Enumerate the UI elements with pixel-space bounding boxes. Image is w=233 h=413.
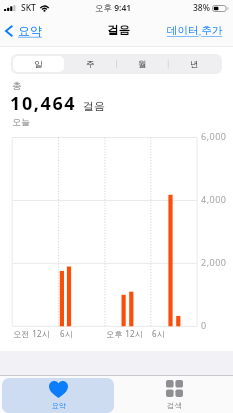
staticText: 오후 12시 (106, 328, 144, 339)
staticText: 오후 9:41 (95, 2, 132, 14)
staticText: 오전 12시 (13, 328, 51, 339)
button[interactable]: 요약 (0, 21, 48, 40)
staticText: 걸음 (83, 99, 105, 113)
staticText: 총 (12, 80, 22, 92)
staticText: 4,000 (201, 193, 227, 205)
staticText: 년 (190, 59, 199, 70)
button[interactable]: 일 (13, 56, 64, 72)
other: Browse (166, 380, 183, 397)
button[interactable]: 년 (168, 56, 220, 72)
button[interactable]: Summary (2, 378, 114, 413)
button[interactable]: Browse (116, 376, 233, 413)
staticText: 일 (34, 59, 43, 70)
staticText: 요약 (18, 23, 42, 38)
staticText: 10,464 (10, 91, 77, 116)
staticText: 6,000 (201, 130, 227, 142)
staticText: 6시 (152, 328, 166, 339)
staticText: 38% (193, 2, 210, 14)
staticText: 0 (201, 319, 207, 331)
staticText: 주 (86, 59, 95, 70)
staticText: 6시 (60, 328, 74, 339)
other: Summary (49, 381, 68, 398)
staticText: 2,000 (201, 256, 227, 268)
staticText: 요약 (52, 401, 66, 410)
button[interactable]: 주 (64, 56, 116, 72)
staticText: 걸음 (107, 23, 130, 37)
button[interactable]: 월 (116, 56, 168, 72)
staticText: 월 (138, 59, 147, 70)
staticText: SKT (21, 2, 36, 14)
staticText: 오늘 (12, 116, 30, 127)
button[interactable]: 데이터 추가 (161, 20, 233, 40)
staticText: 검색 (167, 401, 182, 410)
